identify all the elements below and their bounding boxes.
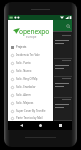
staticText: Solic. Enarbolar — [16, 85, 36, 89]
staticText: Solic. Mejoras — [16, 101, 34, 105]
button[interactable]: Search — [62, 20, 74, 32]
button[interactable]: Home — [33, 121, 47, 130]
staticText: Parte Tecnico by Mail — [16, 116, 43, 120]
button[interactable]: Solic. Nuevo — [8, 67, 53, 75]
button[interactable]: Solic. Ring Of Mp — [8, 75, 53, 83]
staticText: openexpo — [19, 27, 50, 36]
button[interactable]: Back — [14, 121, 28, 130]
staticText: Solic. Nuevo — [16, 69, 32, 73]
staticText: europe — [26, 35, 37, 39]
button[interactable]: Parte Tecnico by Mail — [8, 115, 53, 121]
staticText: Incidencia Tec Vale — [16, 53, 40, 57]
button[interactable]: Super Cover By Tecnifie — [8, 107, 53, 115]
button[interactable]: Solic. Alarm — [8, 91, 53, 99]
staticText: Projects — [16, 45, 27, 49]
staticText: Solic. Ring Of Mp — [16, 77, 38, 81]
button[interactable]: Projects — [8, 43, 53, 51]
staticText: Super Cover By Tecnifie — [16, 109, 46, 113]
button[interactable]: Solic. Enarbolar — [8, 83, 53, 91]
staticText: Solic. Alarm — [16, 93, 31, 97]
button[interactable]: Recent apps — [53, 121, 67, 130]
button[interactable]: Incidencia Tec Vale — [8, 51, 53, 59]
button[interactable]: Solic. Mejoras — [8, 99, 53, 107]
staticText: Solic. Punto — [16, 61, 31, 65]
button[interactable]: Solic. Punto — [8, 59, 53, 67]
